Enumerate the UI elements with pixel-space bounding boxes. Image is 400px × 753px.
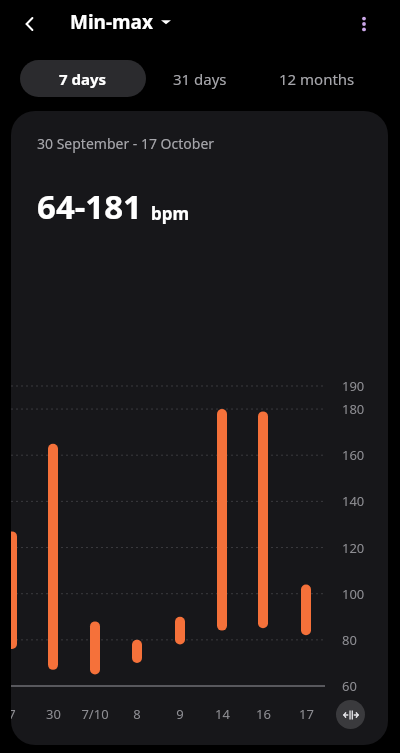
staticText: 8 [133, 705, 141, 723]
staticText: 12 months [279, 69, 355, 89]
staticText: 7/10 [81, 705, 109, 723]
staticText: Min-max [70, 9, 153, 35]
staticText: 190 [342, 377, 365, 395]
staticText: 160 [342, 446, 365, 464]
button[interactable]: 12 months [256, 60, 378, 97]
staticText: 9 [176, 705, 184, 723]
staticText: 17 [299, 705, 314, 723]
staticText: 80 [342, 631, 357, 649]
staticText: 30 September - 17 October [37, 134, 215, 153]
button[interactable]: Adjust range [336, 700, 365, 729]
staticText: 180 [342, 400, 365, 418]
staticText: 64-181 [37, 184, 142, 229]
button[interactable]: Back [10, 4, 50, 44]
staticText: 30 [46, 705, 61, 723]
staticText: 16 [256, 705, 271, 723]
staticText: 14 [215, 705, 230, 723]
staticText: 7 days [59, 69, 107, 89]
staticText: 100 [342, 585, 365, 603]
staticText: 7 [11, 705, 16, 723]
staticText: 60 [342, 677, 357, 695]
button[interactable]: More options [344, 4, 384, 44]
button[interactable]: 7 days [20, 60, 146, 97]
staticText: 120 [342, 539, 365, 557]
button[interactable]: 31 days [152, 60, 248, 97]
staticText: bpm [151, 202, 190, 225]
staticText: 31 days [173, 69, 227, 89]
staticText: 140 [342, 492, 365, 510]
button[interactable]: Min-max [68, 2, 173, 42]
